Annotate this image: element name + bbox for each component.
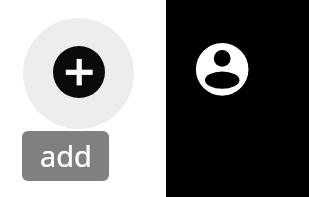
button[interactable]: Add: [53, 46, 105, 98]
staticText: add: [40, 136, 92, 175]
button[interactable]: Account: [195, 42, 249, 96]
button[interactable]: add: [22, 131, 109, 181]
